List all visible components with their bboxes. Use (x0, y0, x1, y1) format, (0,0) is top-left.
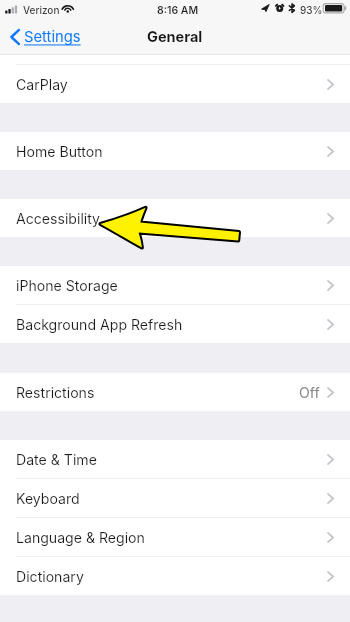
staticText: 8:16 AM (157, 4, 199, 17)
button[interactable]: Language & Region (0, 518, 350, 556)
button[interactable]: Back to Settings (0, 28, 81, 46)
button[interactable]: CarPlay (0, 65, 350, 103)
button[interactable]: Date & Time (0, 440, 350, 478)
staticText: Home Button (16, 143, 103, 160)
staticText: 93% (300, 4, 323, 16)
staticText: Background App Refresh (16, 316, 183, 333)
button[interactable]: iPhone Storage (0, 266, 350, 304)
other: Back to Settings (10, 29, 20, 45)
staticText: Verizon (23, 4, 60, 16)
button[interactable]: Accessibility (0, 199, 350, 237)
staticText: Off (299, 384, 320, 401)
staticText: CarPlay (16, 76, 68, 93)
staticText: Accessibility (16, 210, 101, 227)
button[interactable]: Restrictions (0, 373, 350, 411)
button[interactable]: Dictionary (0, 557, 350, 595)
button[interactable]: Background App Refresh (0, 305, 350, 343)
staticText: Settings (24, 28, 81, 46)
staticText: General (147, 28, 203, 46)
staticText: Language & Region (16, 529, 145, 546)
staticText: Keyboard (16, 490, 80, 507)
staticText: Dictionary (16, 568, 84, 585)
staticText: iPhone Storage (16, 277, 118, 294)
staticText: Date & Time (16, 451, 97, 468)
staticText: Restrictions (16, 384, 95, 401)
button[interactable]: Keyboard (0, 479, 350, 517)
button[interactable]: Home Button (0, 132, 350, 170)
